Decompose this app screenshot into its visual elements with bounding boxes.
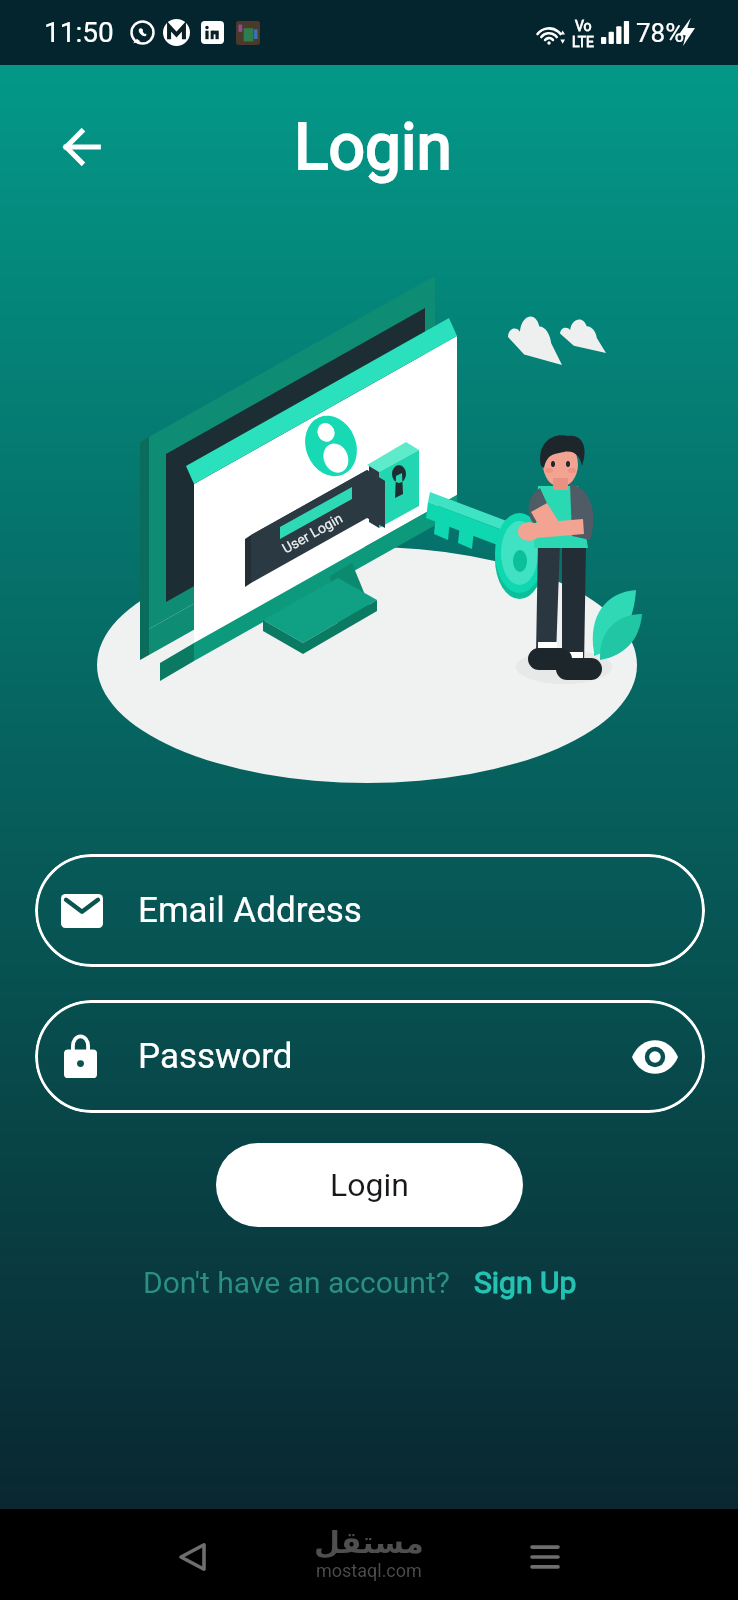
staticText: Login (330, 1166, 409, 1204)
button[interactable]: Login (216, 1143, 523, 1227)
button[interactable]: Recent apps (521, 1533, 569, 1581)
staticText: 78% (636, 18, 685, 48)
staticText: User Login (279, 509, 346, 556)
staticText: LTE (572, 34, 594, 50)
staticText: Sign Up (474, 1265, 577, 1300)
staticText: Email Address (138, 890, 362, 931)
button[interactable]: Password (35, 1000, 705, 1113)
staticText: Password (138, 1036, 293, 1077)
button[interactable]: Back (168, 1533, 216, 1581)
button[interactable]: Sign Up (474, 1265, 577, 1300)
button[interactable]: Back (63, 121, 115, 173)
staticText: 11:50 (44, 16, 114, 49)
staticText: mostaql.com (316, 1560, 422, 1581)
staticText: Don't have an account? (143, 1265, 450, 1300)
staticText: مستقل (314, 1525, 424, 1560)
staticText: Vo (575, 18, 592, 34)
staticText: Login (294, 110, 452, 185)
button[interactable]: Show password (615, 1017, 695, 1097)
button[interactable]: Email Address (35, 854, 705, 967)
